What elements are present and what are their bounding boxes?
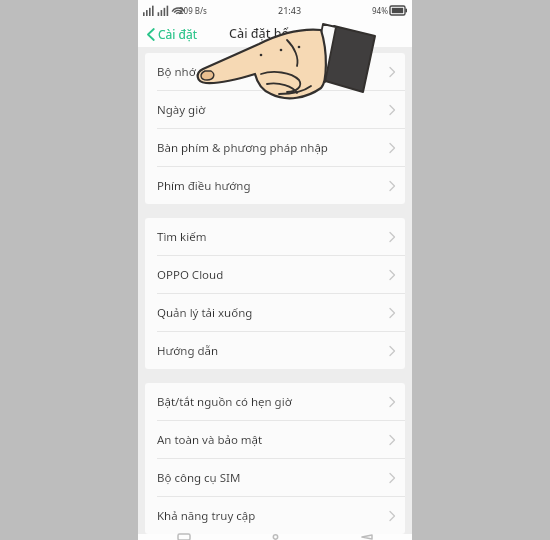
button[interactable]: Khả năng truy cập xyxy=(145,497,405,534)
button[interactable]: Recent apps xyxy=(138,534,230,540)
staticText: Hướng dẫn xyxy=(157,343,219,359)
button[interactable]: Tìm kiếm xyxy=(145,218,405,255)
staticText: Cài đặt bổ sung xyxy=(229,25,322,42)
button[interactable]: Quản lý tải xuống xyxy=(145,294,405,331)
button[interactable]: Hướng dẫn xyxy=(145,332,405,369)
staticText: Bộ nhớ xyxy=(157,64,196,80)
staticText: Cài đặt xyxy=(158,26,198,42)
staticText: Bàn phím & phương pháp nhập xyxy=(157,140,328,156)
button[interactable]: Ngày giờ xyxy=(145,91,405,128)
staticText: OPPO Cloud xyxy=(157,267,224,283)
staticText: 21:43 xyxy=(278,4,302,16)
button[interactable]: Cài đặt xyxy=(144,23,201,45)
button[interactable]: Bộ nhớ xyxy=(145,53,405,90)
button[interactable]: An toàn và bảo mật xyxy=(145,421,405,458)
staticText: Bộ công cụ SIM xyxy=(157,470,241,486)
staticText: Ngày giờ xyxy=(157,102,206,118)
staticText: Khả năng truy cập xyxy=(157,508,256,524)
staticText: 94% xyxy=(372,5,388,16)
button[interactable]: OPPO Cloud xyxy=(145,256,405,293)
button[interactable]: Bộ công cụ SIM xyxy=(145,459,405,496)
button[interactable]: Phím điều hướng xyxy=(145,167,405,204)
staticText: Tìm kiếm xyxy=(157,229,207,245)
staticText: Bật/tắt nguồn có hẹn giờ xyxy=(157,394,292,410)
staticText: Phím điều hướng xyxy=(157,178,251,194)
staticText: An toàn và bảo mật xyxy=(157,432,263,448)
staticText: Quản lý tải xuống xyxy=(157,305,253,321)
button[interactable]: Home xyxy=(230,534,321,540)
button[interactable]: Bật/tắt nguồn có hẹn giờ xyxy=(145,383,405,420)
button[interactable]: Back xyxy=(321,534,412,540)
staticText: 209 B/s xyxy=(179,5,208,16)
button[interactable]: Bàn phím & phương pháp nhập xyxy=(145,129,405,166)
